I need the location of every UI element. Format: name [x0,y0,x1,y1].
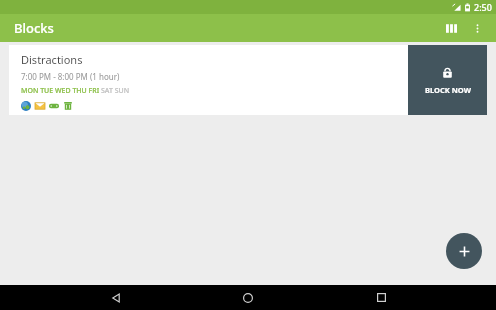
staticText: BLOCK NOW [425,85,471,95]
button[interactable]: More options [464,15,490,41]
button[interactable]: Add block [446,233,482,269]
staticText: Distractions [21,52,83,67]
button[interactable]: View columns [438,15,464,41]
button[interactable]: Recent apps [364,285,398,310]
button[interactable]: Home [231,285,265,310]
button[interactable]: Distractions [9,45,487,115]
button[interactable]: Back [99,285,133,310]
staticText: Blocks [14,19,54,37]
staticText: MON TUE WED THU FRI SAT SUN [21,86,130,96]
staticText: 7:00 PM - 8:00 PM (1 hour) [21,71,120,82]
staticText: 2:50 [474,1,492,13]
button[interactable]: BLOCK NOW [408,45,487,115]
